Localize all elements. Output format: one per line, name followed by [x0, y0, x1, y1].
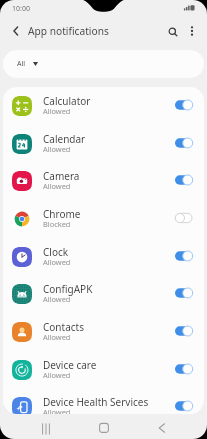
button[interactable]: ConfigAPK	[3, 284, 204, 321]
staticText: Contacts	[43, 320, 84, 334]
button[interactable]: Device care	[3, 360, 204, 397]
button[interactable]: Camera	[3, 171, 204, 208]
button[interactable]: Calculator	[3, 96, 204, 133]
button[interactable]: Allowed, on	[174, 133, 194, 153]
staticText: Clock	[43, 245, 69, 259]
staticText: 10:00	[12, 4, 30, 14]
staticText: Device care	[43, 358, 97, 372]
staticText: Allowed	[43, 294, 71, 304]
staticText: Allowed	[43, 370, 71, 380]
button[interactable]: Clock	[3, 247, 204, 284]
button[interactable]: Allowed, on	[174, 170, 194, 190]
button[interactable]: Contacts	[3, 322, 204, 359]
staticText: Allowed	[43, 332, 71, 342]
button[interactable]: Recent apps	[34, 418, 58, 439]
button[interactable]: Allowed, on	[174, 95, 194, 115]
button[interactable]: Calendar	[3, 134, 204, 171]
button[interactable]: Back	[150, 418, 174, 439]
staticText: All	[17, 59, 26, 69]
staticText: App notifications	[28, 24, 109, 38]
button[interactable]: Chrome	[3, 209, 204, 246]
button[interactable]: Blocked, off	[174, 208, 194, 228]
staticText: Calculator	[43, 94, 91, 108]
button[interactable]: Allowed, on	[174, 321, 194, 341]
button[interactable]: Allowed, on	[174, 283, 194, 303]
staticText: Allowed	[43, 181, 71, 191]
staticText: Blocked	[43, 219, 71, 229]
staticText: Allowed	[43, 257, 71, 267]
button[interactable]: Allowed, on	[174, 246, 194, 266]
button[interactable]: Allowed, on	[174, 359, 194, 379]
staticText: Chrome	[43, 207, 81, 221]
button[interactable]: Allowed, on	[174, 396, 194, 414]
staticText: Calendar	[43, 132, 86, 146]
button[interactable]: Search	[163, 22, 182, 41]
staticText: Allowed	[43, 106, 71, 116]
staticText: ConfigAPK	[43, 282, 93, 296]
button[interactable]: Navigate up	[7, 22, 25, 40]
button[interactable]: More options	[183, 22, 201, 40]
button[interactable]: All	[3, 50, 204, 78]
staticText: Allowed	[43, 144, 71, 154]
button[interactable]: Device Health Services	[3, 397, 204, 414]
staticText: Device Health Services	[43, 395, 149, 409]
staticText: Allowed	[43, 407, 71, 414]
button[interactable]: Home	[92, 418, 116, 439]
staticText: Camera	[43, 169, 80, 183]
